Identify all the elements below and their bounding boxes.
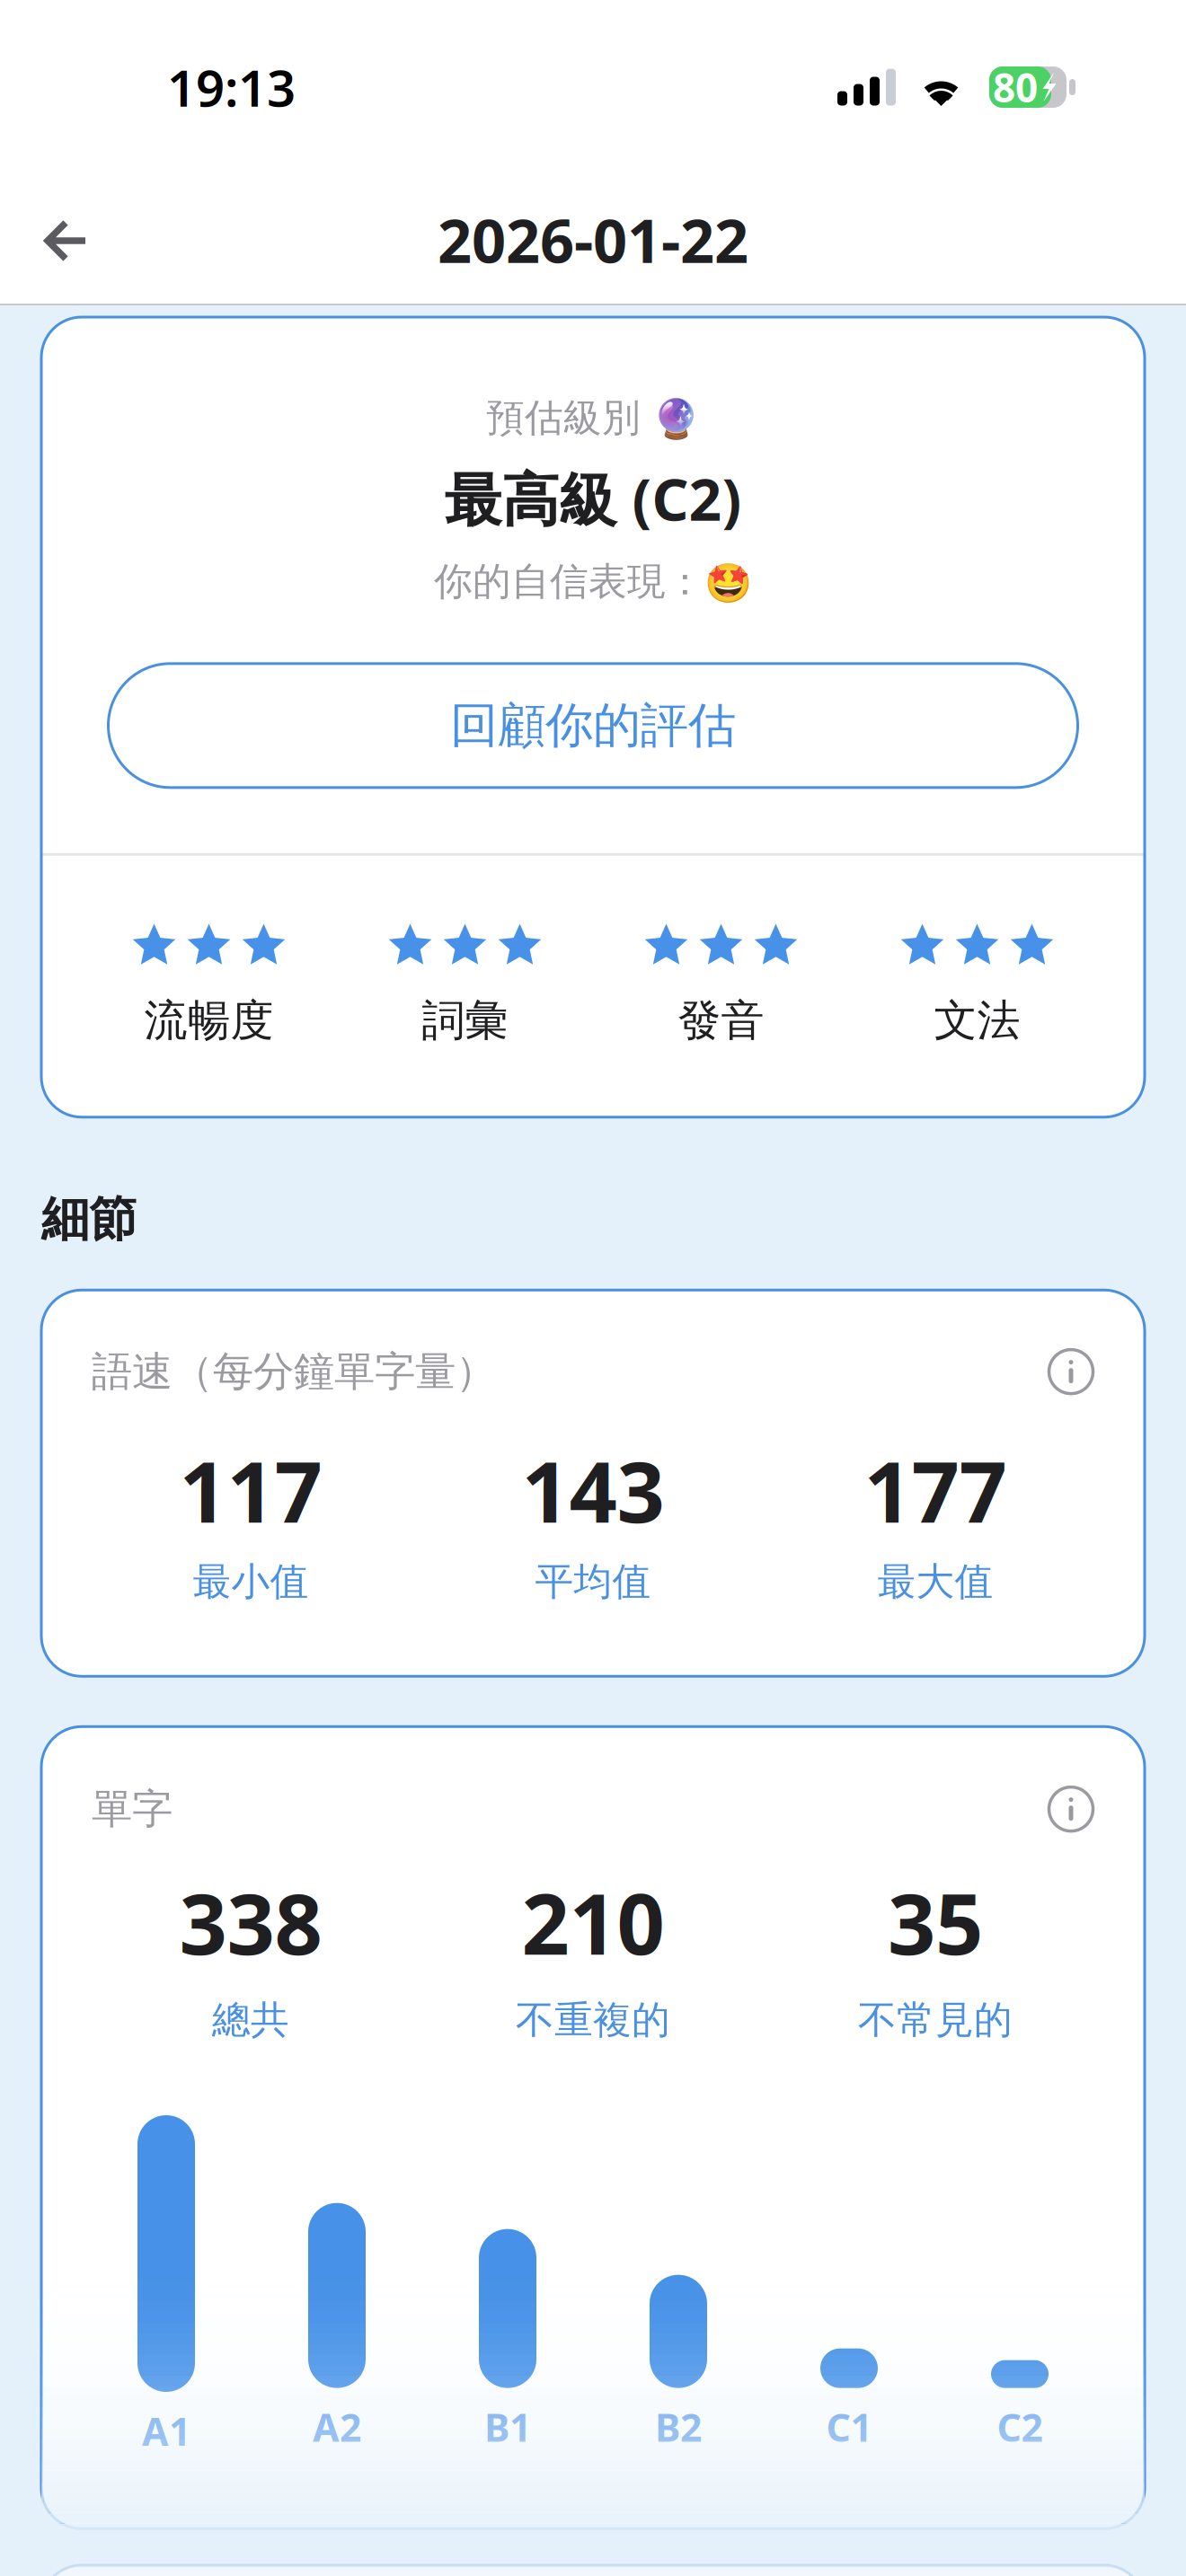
- staticText: 不重複的: [516, 1997, 670, 2044]
- staticText: 19:13: [167, 54, 296, 121]
- staticText: 最小值: [193, 1558, 309, 1605]
- button[interactable]: Info: [1048, 1348, 1094, 1395]
- button[interactable]: Back: [23, 181, 108, 268]
- staticText: 預估級別 🔮: [486, 394, 700, 441]
- staticText: A1: [142, 2405, 190, 2456]
- staticText: 80: [993, 61, 1038, 113]
- staticText: 最大值: [877, 1558, 993, 1605]
- staticText: 語速（每分鐘單字量）: [92, 1347, 496, 1397]
- staticText: 細節: [41, 1190, 137, 1249]
- staticText: 117: [179, 1434, 322, 1546]
- staticText: B2: [655, 2401, 702, 2452]
- staticText: 單字: [92, 1784, 173, 1834]
- staticText: 發音: [678, 994, 764, 1047]
- staticText: B1: [484, 2401, 531, 2452]
- staticText: 回顧你的評估: [450, 696, 736, 755]
- staticText: C2: [997, 2401, 1043, 2452]
- staticText: 2026-01-22: [438, 200, 748, 280]
- staticText: C1: [826, 2401, 872, 2452]
- staticText: 你的自信表現：🤩: [434, 558, 752, 605]
- button[interactable]: Info: [1048, 1786, 1094, 1832]
- button[interactable]: 回顧你的評估: [108, 664, 1078, 788]
- staticText: 177: [864, 1434, 1007, 1546]
- staticText: 不常見的: [858, 1997, 1013, 2044]
- staticText: 平均值: [535, 1558, 651, 1605]
- staticText: 文法: [934, 994, 1020, 1047]
- staticText: 210: [522, 1866, 664, 1978]
- staticText: A2: [313, 2401, 361, 2452]
- staticText: 最高級 (C2): [444, 460, 742, 537]
- staticText: 35: [888, 1866, 983, 1978]
- staticText: 143: [522, 1434, 664, 1546]
- staticText: 338: [179, 1866, 322, 1978]
- staticText: 詞彙: [422, 994, 508, 1047]
- staticText: 流暢度: [144, 994, 274, 1047]
- staticText: 總共: [212, 1997, 289, 2044]
